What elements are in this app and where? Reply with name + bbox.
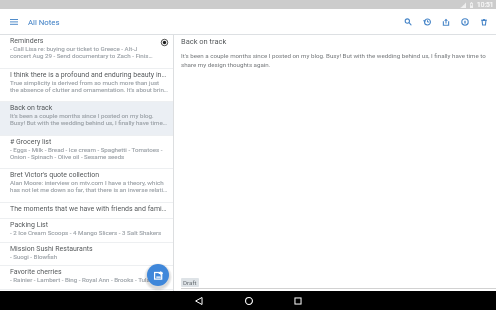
staticText: I think there is a profound and enduring… (10, 71, 167, 79)
staticText: It's been a couple months since I posted… (10, 112, 154, 119)
staticText: Busy! But with the wedding behind us, I … (10, 119, 167, 126)
staticText: Draft (183, 279, 197, 286)
button[interactable]: Mission Sushi Restaurants (0, 243, 173, 266)
staticText: Onion - Spinach - Olive oil - Sesame see… (10, 153, 125, 160)
staticText: - Rainier - Lambert - Bing - Royal Ann -… (10, 276, 154, 283)
button[interactable]: Packing List (0, 219, 173, 243)
button[interactable]: The moments that we have with friends an… (0, 203, 173, 219)
staticText: 10:51 (477, 1, 494, 9)
button[interactable]: Reminders (0, 35, 173, 69)
button[interactable]: Delete (474, 9, 493, 35)
button[interactable]: Info (455, 9, 474, 35)
staticText: - Suogi - Blowfish (10, 253, 58, 260)
staticText: Bret Victor's quote collection (10, 171, 100, 179)
button[interactable]: Search (398, 9, 417, 35)
staticText: True simplicity is derived from so much … (10, 79, 160, 86)
button[interactable]: Draft (181, 278, 199, 287)
staticText: - Eggs - Milk - Bread - Ice cream - Spag… (10, 146, 163, 153)
staticText: The moments that we have with friends an… (10, 205, 167, 213)
staticText: Reminders (10, 37, 44, 45)
staticText: the absence of clutter and ornamentation… (10, 86, 168, 93)
button[interactable]: # Grocery list (0, 136, 173, 169)
button[interactable]: Create new note (147, 264, 169, 286)
button[interactable]: Home (229, 291, 269, 310)
staticText: All Notes (28, 18, 60, 27)
staticText: - Call Lisa re: buying our ticket to Gre… (10, 45, 138, 52)
button[interactable]: Share (436, 9, 455, 35)
button[interactable]: Revision history (417, 9, 436, 35)
button[interactable]: Back on track (0, 102, 173, 136)
staticText: Mission Sushi Restaurants (10, 245, 93, 253)
button[interactable]: Recent apps (278, 291, 318, 310)
staticText: Back on track (10, 104, 53, 112)
staticText: - 2 Ice Cream Scoops - 4 Mango Slicers -… (10, 229, 162, 236)
staticText: # Grocery list (10, 138, 52, 146)
staticText: concert Aug 29 - Send documentary to Zac… (10, 52, 153, 59)
button[interactable]: I think there is a profound and enduring… (0, 69, 173, 102)
staticText: Alan Moore: interview on mtv.com I have … (10, 179, 164, 186)
staticText: Favorite cherries (10, 268, 62, 276)
staticText: It's been a couple months since I posted… (181, 52, 489, 69)
button[interactable]: Favorite cherries (0, 266, 173, 290)
button[interactable]: Open navigation drawer (0, 9, 28, 35)
staticText: Packing List (10, 221, 49, 229)
button[interactable]: Back (179, 291, 219, 310)
staticText: Back on track (181, 37, 227, 46)
button[interactable]: Bret Victor's quote collection (0, 169, 173, 203)
staticText: has not let me down so far, that there i… (10, 186, 168, 193)
